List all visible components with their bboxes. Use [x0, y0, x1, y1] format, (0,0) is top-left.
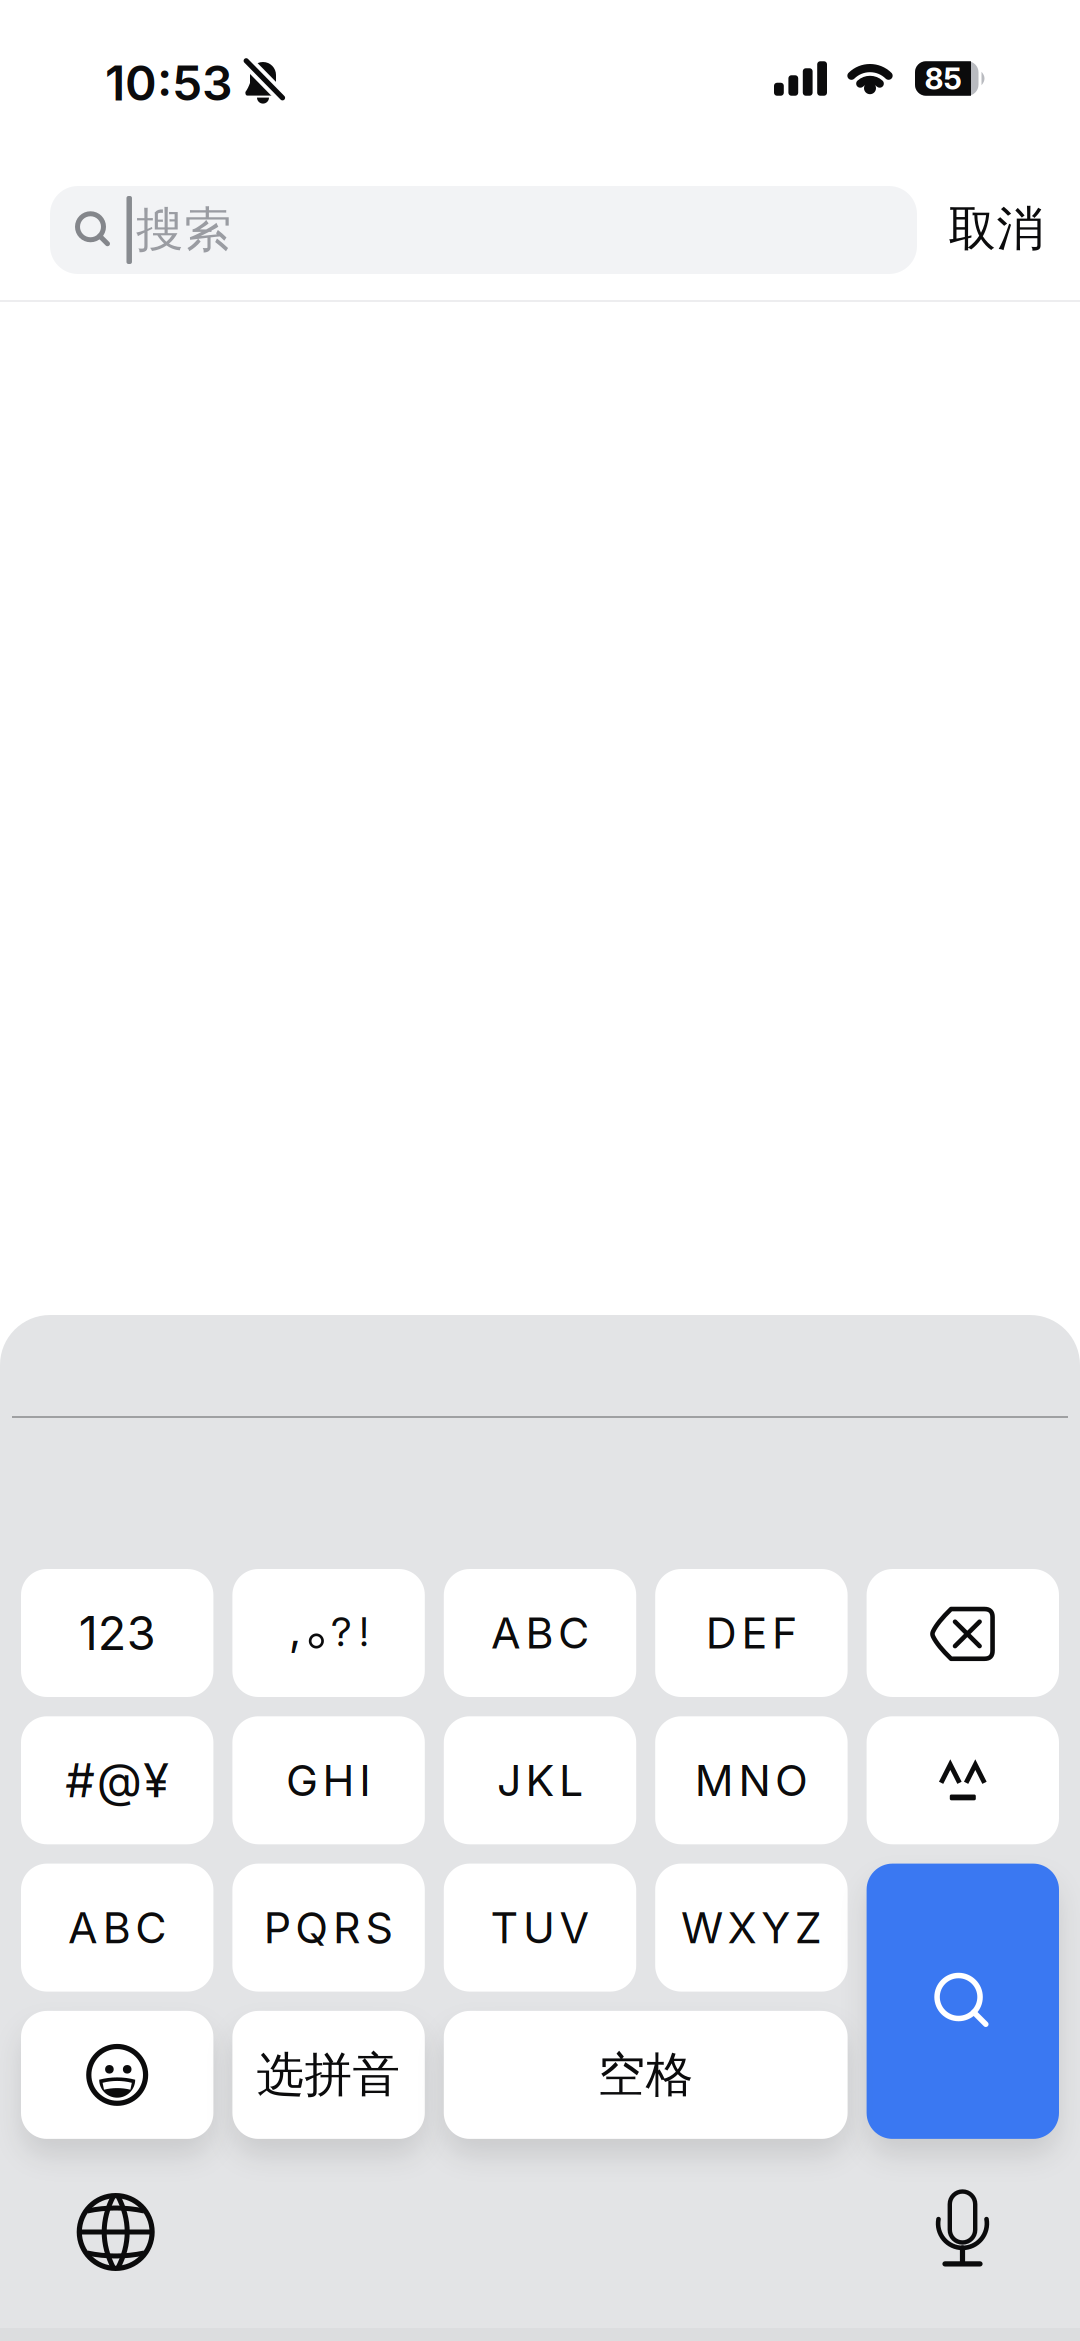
button[interactable]: [867, 1569, 1059, 1697]
button[interactable]: P: [232, 1864, 425, 1992]
button[interactable]: 取消: [948, 199, 1044, 259]
staticText: ¥: [143, 1752, 169, 1809]
staticText: C: [135, 1902, 166, 1953]
staticText: N: [738, 1754, 770, 1806]
button[interactable]: 选拼音: [232, 2011, 425, 2139]
button[interactable]: M: [655, 1716, 848, 1844]
staticText: 85: [924, 60, 961, 97]
staticText: U: [523, 1902, 555, 1953]
button[interactable]: J: [444, 1716, 636, 1844]
staticText: K: [525, 1754, 554, 1806]
staticText: M: [695, 1754, 734, 1806]
button[interactable]: [21, 2011, 213, 2139]
staticText: Y: [761, 1902, 790, 1953]
button[interactable]: D: [655, 1569, 848, 1697]
staticText: 2: [98, 1605, 127, 1661]
staticText: #: [65, 1752, 95, 1809]
staticText: 搜索: [136, 200, 232, 260]
staticText: T: [490, 1902, 518, 1953]
staticText: Z: [795, 1902, 822, 1953]
staticText: 空格: [598, 2045, 694, 2105]
staticText: 取消: [948, 199, 1044, 259]
staticText: H: [323, 1754, 355, 1806]
button[interactable]: [77, 2193, 155, 2271]
staticText: 3: [127, 1605, 156, 1661]
staticText: D: [706, 1607, 737, 1659]
button[interactable]: 1: [21, 1569, 213, 1697]
staticText: ,: [289, 1602, 302, 1656]
staticText: I: [359, 1754, 371, 1806]
button[interactable]: 搜索: [50, 186, 917, 274]
staticText: Q: [295, 1902, 328, 1953]
staticText: J: [497, 1754, 521, 1806]
staticText: A: [491, 1607, 521, 1659]
staticText: P: [264, 1902, 291, 1953]
button[interactable]: A: [444, 1569, 636, 1697]
staticText: O: [775, 1754, 808, 1806]
staticText: 10:53: [105, 54, 233, 112]
button[interactable]: G: [232, 1716, 425, 1844]
staticText: ?: [331, 1608, 352, 1656]
staticText: 1: [79, 1605, 98, 1661]
staticText: G: [286, 1754, 318, 1806]
staticText: B: [525, 1607, 553, 1659]
button[interactable]: [867, 1864, 1059, 2139]
button[interactable]: [867, 1716, 1059, 1844]
button[interactable]: #: [21, 1716, 213, 1844]
staticText: A: [68, 1902, 98, 1953]
button[interactable]: ,: [232, 1569, 425, 1697]
staticText: S: [365, 1902, 393, 1953]
staticText: R: [333, 1902, 361, 1953]
staticText: B: [103, 1902, 131, 1953]
button[interactable]: T: [444, 1864, 636, 1992]
staticText: V: [560, 1902, 590, 1953]
button[interactable]: A: [21, 1864, 213, 1992]
staticText: W: [681, 1902, 723, 1953]
button[interactable]: 空格: [444, 2011, 848, 2139]
staticText: 选拼音: [257, 2045, 401, 2105]
staticText: C: [558, 1607, 589, 1659]
staticText: L: [559, 1754, 583, 1806]
staticText: E: [741, 1607, 767, 1659]
staticText: @: [97, 1752, 142, 1809]
staticText: F: [772, 1607, 797, 1659]
button[interactable]: W: [655, 1864, 848, 1992]
button[interactable]: [938, 2189, 987, 2266]
staticText: !: [360, 1608, 369, 1656]
staticText: X: [728, 1902, 757, 1953]
